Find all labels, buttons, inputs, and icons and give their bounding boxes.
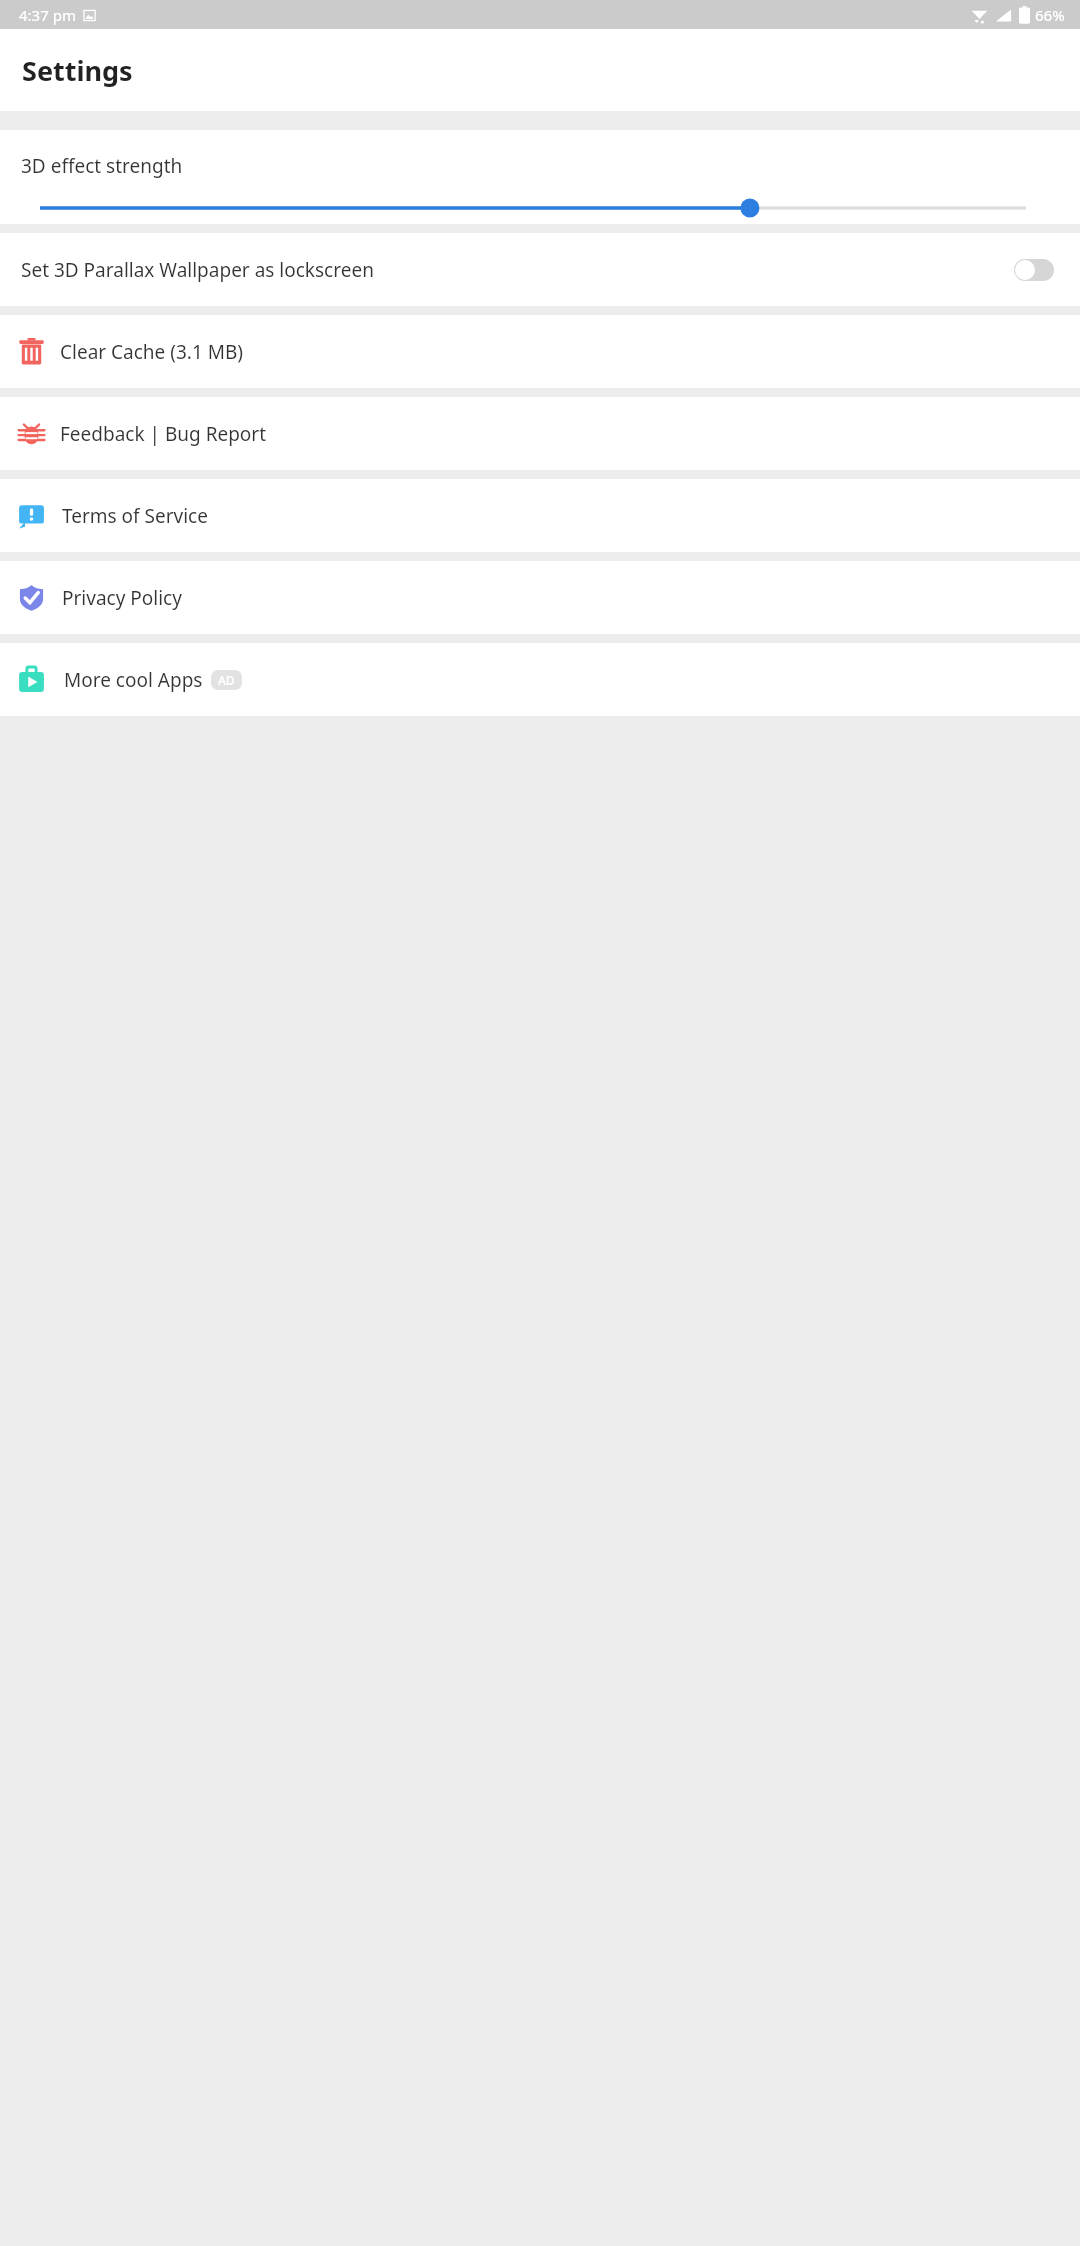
staticText: Clear Cache (3.1 MB) xyxy=(60,339,244,365)
staticText: 3D effect strength xyxy=(21,153,183,179)
button[interactable]: Privacy Policy xyxy=(0,561,1080,634)
staticText: Set 3D Parallax Wallpaper as lockscreen xyxy=(21,257,374,283)
staticText: 4:37 pm xyxy=(19,5,76,25)
staticText: Terms of Service xyxy=(62,503,208,529)
button[interactable]: Terms of Service xyxy=(0,479,1080,552)
staticText: Privacy Policy xyxy=(62,585,182,611)
button[interactable] xyxy=(40,196,1026,220)
staticText: Feedback | Bug Report xyxy=(60,421,267,447)
button[interactable]: Clear Cache xyxy=(0,315,1080,388)
staticText: 66% xyxy=(1035,5,1065,25)
button[interactable]: More cool Apps xyxy=(0,643,1080,716)
staticText: AD xyxy=(218,672,235,688)
button[interactable]: Set 3D Parallax Wallpaper as lockscreen xyxy=(0,233,1080,306)
button[interactable]: Feedback Bug Report xyxy=(0,397,1080,470)
staticText: Settings xyxy=(22,52,133,89)
staticText: More cool Apps xyxy=(64,667,203,693)
